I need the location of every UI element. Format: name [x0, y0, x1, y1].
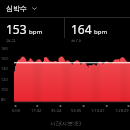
staticText: 164 — [71, 21, 92, 37]
staticText: 1:10:47 — [91, 108, 105, 113]
staticText: 심박수 — [6, 4, 27, 13]
staticText: 80 — [1, 97, 6, 102]
staticText: 120 — [1, 77, 8, 82]
staticText: 180 — [1, 46, 8, 51]
staticText: 160 — [1, 56, 8, 61]
staticText: 35:24 — [51, 108, 62, 113]
staticText: 53:05 — [71, 108, 82, 113]
staticText: 100 — [1, 87, 8, 92]
staticText: 평균 — [6, 38, 16, 42]
staticText: 140 — [1, 66, 8, 71]
button[interactable]: 153 — [0, 18, 64, 42]
staticText: 1:28:29 — [115, 108, 129, 113]
button[interactable]: 164 — [65, 18, 130, 42]
staticText: 0:00 — [12, 108, 20, 113]
button[interactable]: 심박수 — [0, 0, 130, 17]
staticText: 17:42 — [31, 108, 42, 113]
staticText: 최대 — [71, 38, 81, 42]
other: Expand — [31, 5, 38, 12]
staticText: bpm — [29, 28, 42, 36]
staticText: 153 — [6, 21, 27, 37]
staticText: 시간(시:분:초) — [50, 120, 81, 127]
staticText: bpm — [94, 28, 107, 36]
